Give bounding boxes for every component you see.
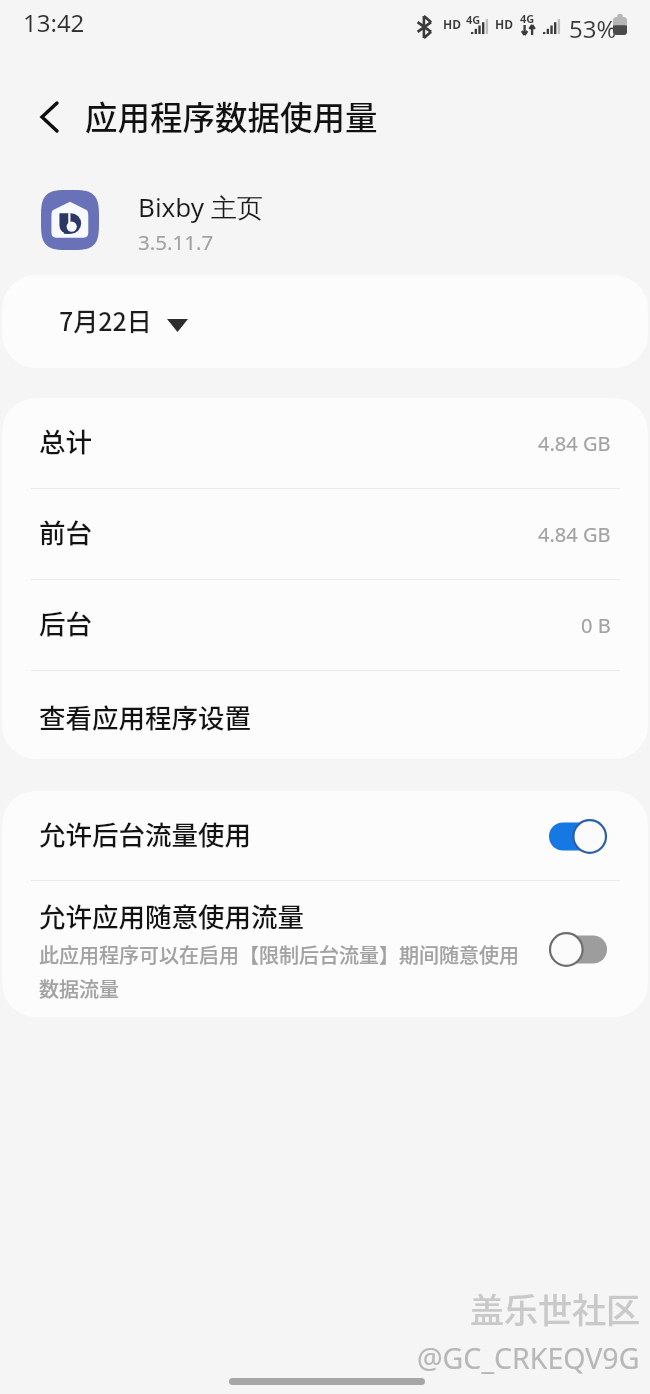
staticText: 4.84 GB — [538, 521, 611, 548]
staticText: @GC_CRKEQV9G — [417, 1339, 640, 1378]
staticText: 4.84 GB — [538, 430, 611, 457]
staticText: Bixby 主页 — [138, 189, 263, 225]
staticText: 4G — [520, 11, 535, 26]
staticText: 前台 — [39, 512, 92, 550]
staticText: HD — [495, 16, 513, 32]
staticText: 7月22日 — [59, 302, 152, 338]
staticText: 13:42 — [23, 6, 85, 39]
staticText: 盖乐世社区 — [470, 1284, 640, 1333]
button[interactable]: Toggle on — [546, 815, 610, 857]
button[interactable]: 允许应用随意使用流量 — [2, 881, 648, 1017]
staticText: 4G — [466, 12, 481, 27]
staticText: HD — [443, 16, 461, 32]
button[interactable]: 后台 — [2, 580, 648, 670]
staticText: 3.5.11.7 — [138, 228, 214, 256]
button[interactable]: 查看应用程序设置 — [2, 671, 648, 759]
button[interactable]: 总计 — [2, 398, 648, 488]
staticText: 后台 — [39, 603, 92, 641]
staticText: 允许后台流量使用 — [39, 814, 251, 852]
staticText: 允许应用随意使用流量 — [39, 896, 304, 934]
button[interactable]: Back — [20, 88, 78, 146]
staticText: 应用程序数据使用量 — [85, 92, 378, 139]
button[interactable]: Toggle off — [546, 928, 610, 970]
button[interactable]: 7月22日 — [2, 275, 648, 368]
staticText: 此应用程序可以在启用【限制后台流量】期间随意使用数据流量 — [39, 940, 519, 1003]
staticText: 查看应用程序设置 — [39, 697, 251, 735]
staticText: 0 B — [581, 612, 611, 639]
button[interactable]: 前台 — [2, 489, 648, 579]
staticText: 总计 — [39, 421, 92, 459]
button[interactable]: 允许后台流量使用 — [2, 791, 648, 880]
staticText: 53% — [569, 12, 617, 45]
